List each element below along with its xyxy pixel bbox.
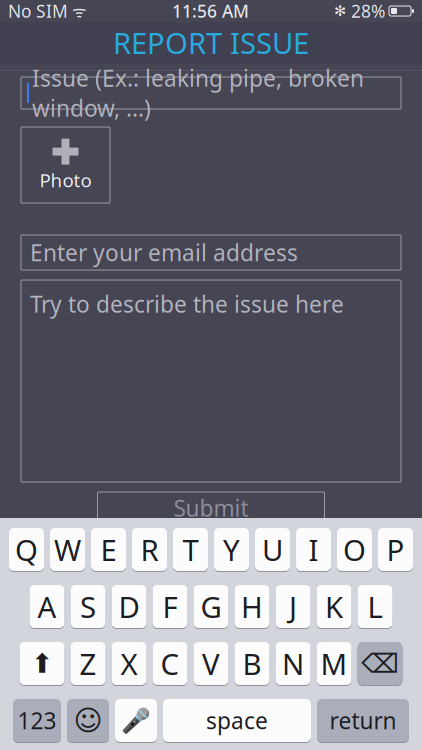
- button[interactable]: Enter your email address: [21, 235, 401, 270]
- staticText: Issue (Ex.: leaking pipe, broken window,…: [32, 63, 364, 123]
- button[interactable]: J: [275, 584, 310, 629]
- button[interactable]: A: [29, 584, 64, 629]
- staticText: B: [242, 644, 261, 683]
- button[interactable]: G: [193, 584, 228, 629]
- staticText: REPORT ISSUE: [113, 23, 309, 62]
- button[interactable]: P: [378, 527, 413, 572]
- staticText: H: [241, 587, 263, 626]
- button[interactable]: Y: [214, 527, 249, 572]
- button[interactable]: H: [234, 584, 269, 629]
- staticText: return: [329, 705, 396, 735]
- staticText: Z: [79, 644, 96, 683]
- button[interactable]: Add Photo: [21, 127, 110, 203]
- staticText: Photo: [39, 168, 91, 192]
- staticText: ☺: [73, 705, 102, 736]
- staticText: X: [120, 644, 137, 683]
- staticText: space: [206, 705, 268, 735]
- button[interactable]: C: [152, 641, 187, 686]
- staticText: T: [182, 530, 198, 569]
- staticText: Y: [223, 530, 240, 569]
- button[interactable]: U: [255, 527, 290, 572]
- button[interactable]: R: [132, 527, 167, 572]
- staticText: L: [367, 587, 382, 626]
- button[interactable]: Emoji: [67, 698, 109, 743]
- staticText: O: [343, 530, 366, 569]
- button[interactable]: Shift: [19, 641, 64, 686]
- staticText: E: [100, 530, 116, 569]
- button[interactable]: F: [152, 584, 187, 629]
- staticText: ✻: [334, 3, 346, 19]
- staticText: W: [54, 530, 81, 569]
- button[interactable]: W: [50, 527, 85, 572]
- button[interactable]: Dictate: [115, 698, 157, 743]
- button[interactable]: E: [91, 527, 126, 572]
- staticText: U: [262, 530, 283, 569]
- staticText: V: [202, 644, 220, 683]
- button[interactable]: 123: [13, 698, 61, 743]
- staticText: 11:56 AM: [172, 0, 249, 22]
- staticText: 🎤: [121, 707, 151, 734]
- staticText: S: [80, 587, 96, 626]
- staticText: Try to describe the issue here: [30, 289, 344, 319]
- staticText: D: [118, 587, 139, 626]
- staticText: Enter your email address: [30, 237, 298, 267]
- staticText: A: [37, 587, 56, 626]
- staticText: Q: [15, 530, 38, 569]
- staticText: No SIM: [8, 0, 68, 22]
- button[interactable]: I: [296, 527, 331, 572]
- staticText: 28%: [346, 0, 385, 22]
- button[interactable]: T: [173, 527, 208, 572]
- staticText: P: [386, 530, 404, 569]
- button[interactable]: B: [234, 641, 269, 686]
- staticText: ᯤ: [68, 0, 87, 22]
- button[interactable]: V: [193, 641, 228, 686]
- button[interactable]: K: [316, 584, 351, 629]
- button[interactable]: Try to describe the issue here: [21, 280, 401, 482]
- button[interactable]: Submit: [97, 492, 324, 524]
- button[interactable]: Delete: [357, 641, 402, 686]
- staticText: N: [282, 644, 304, 683]
- button[interactable]: space: [163, 698, 311, 743]
- button[interactable]: D: [111, 584, 146, 629]
- button[interactable]: Q: [9, 527, 44, 572]
- button[interactable]: Z: [70, 641, 105, 686]
- button[interactable]: Issue (Ex.: leaking pipe, broken window,…: [21, 77, 401, 109]
- button[interactable]: L: [357, 584, 392, 629]
- button[interactable]: N: [275, 641, 310, 686]
- button[interactable]: return: [317, 698, 409, 743]
- staticText: M: [320, 644, 347, 683]
- button[interactable]: S: [70, 584, 105, 629]
- staticText: C: [160, 644, 179, 683]
- staticText: ⌫: [361, 648, 399, 679]
- staticText: Submit: [173, 493, 248, 523]
- staticText: R: [140, 530, 158, 569]
- staticText: J: [289, 587, 297, 626]
- staticText: F: [162, 587, 177, 626]
- button[interactable]: X: [111, 641, 146, 686]
- staticText: 123: [17, 705, 56, 735]
- button[interactable]: M: [316, 641, 351, 686]
- staticText: ⬆: [31, 648, 53, 679]
- staticText: G: [200, 587, 221, 626]
- staticText: K: [325, 587, 343, 626]
- staticText: I: [308, 530, 318, 569]
- button[interactable]: O: [337, 527, 372, 572]
